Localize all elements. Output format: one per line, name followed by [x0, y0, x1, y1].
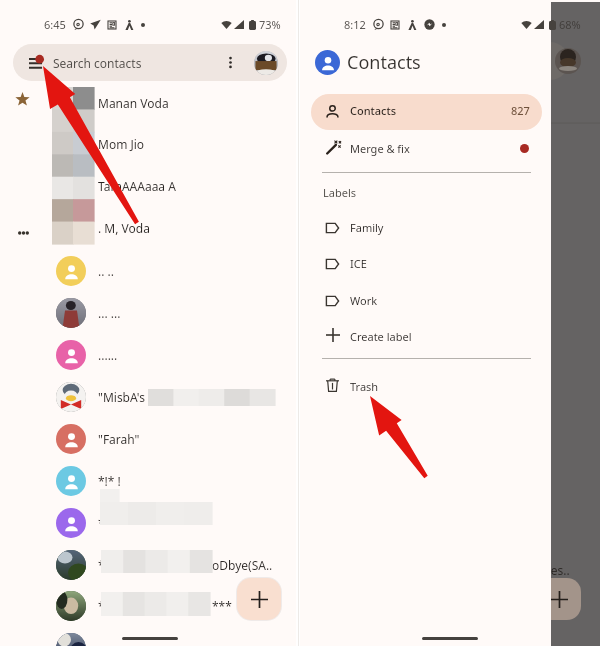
button[interactable]: Open navigation drawer [14, 44, 58, 81]
staticText: * [98, 515, 105, 531]
staticText: . M, Voda [98, 220, 150, 236]
button[interactable]: .. .. [0, 250, 298, 292]
staticText: .. .. [98, 263, 114, 279]
staticText: ICE [350, 256, 367, 271]
button[interactable]: *!* ! [0, 460, 298, 502]
button[interactable]: Favorites [15, 92, 30, 107]
button[interactable]: "Farah" [0, 418, 298, 460]
button[interactable]: ICE [311, 247, 542, 280]
button[interactable] [0, 627, 298, 646]
button[interactable]: Contacts [315, 50, 421, 75]
button[interactable]: Manan Voda [0, 82, 298, 124]
staticText: Mom Jio [98, 136, 145, 152]
staticText: 73% [259, 17, 281, 32]
button[interactable]: TaraAAAaaa A [0, 165, 298, 207]
staticText: Create label [350, 329, 412, 344]
button[interactable]: Open navigation drawer [13, 44, 287, 81]
button[interactable]: Work [311, 284, 542, 317]
button[interactable]: Merge & fix [311, 132, 542, 165]
button[interactable]: Create contact [237, 578, 281, 620]
button[interactable]: * [0, 585, 298, 627]
staticText: Family [350, 220, 384, 235]
staticText: * [98, 598, 105, 614]
button[interactable]: Create label [311, 320, 542, 353]
staticText: TaraAAAaaa A [98, 178, 176, 194]
staticText: *** [212, 598, 232, 614]
staticText: ... ... [98, 305, 121, 321]
staticText: 6:45 [44, 17, 66, 32]
staticText: Manan Voda [98, 95, 169, 111]
staticText: Work [350, 293, 378, 308]
button[interactable]: * [0, 544, 298, 586]
button[interactable]: "MisbA's [0, 376, 298, 418]
staticText: Labels [323, 185, 357, 200]
staticText: 827 [511, 103, 530, 118]
staticText: Merge & fix [350, 141, 410, 156]
staticText: Contacts [350, 103, 397, 118]
staticText: ...... [98, 347, 118, 363]
button[interactable]: Trash [311, 370, 542, 403]
button[interactable]: Mom Jio [0, 123, 298, 165]
button[interactable]: Contacts [311, 94, 542, 130]
staticText: 8:12 [344, 17, 366, 32]
button[interactable]: Profile [254, 51, 278, 75]
staticText: Search contacts [53, 55, 142, 71]
button[interactable]: Family [311, 211, 542, 244]
staticText: "MisbA's [98, 389, 145, 405]
staticText: "Farah" [98, 431, 140, 447]
staticText: *!* ! [98, 473, 121, 489]
button[interactable]: ...... [0, 334, 298, 376]
button[interactable]: . M, Voda [0, 207, 298, 249]
staticText: * [98, 557, 105, 573]
staticText: 68% [559, 17, 581, 32]
button[interactable]: More [14, 224, 32, 242]
staticText: Trash [350, 379, 379, 394]
button[interactable]: ... ... [0, 292, 298, 334]
button[interactable]: * [0, 502, 298, 544]
staticText: oDbye(SA.. [212, 557, 273, 573]
staticText: res.. [551, 562, 570, 578]
staticText: Contacts [347, 50, 421, 75]
button[interactable]: More options [215, 44, 245, 81]
